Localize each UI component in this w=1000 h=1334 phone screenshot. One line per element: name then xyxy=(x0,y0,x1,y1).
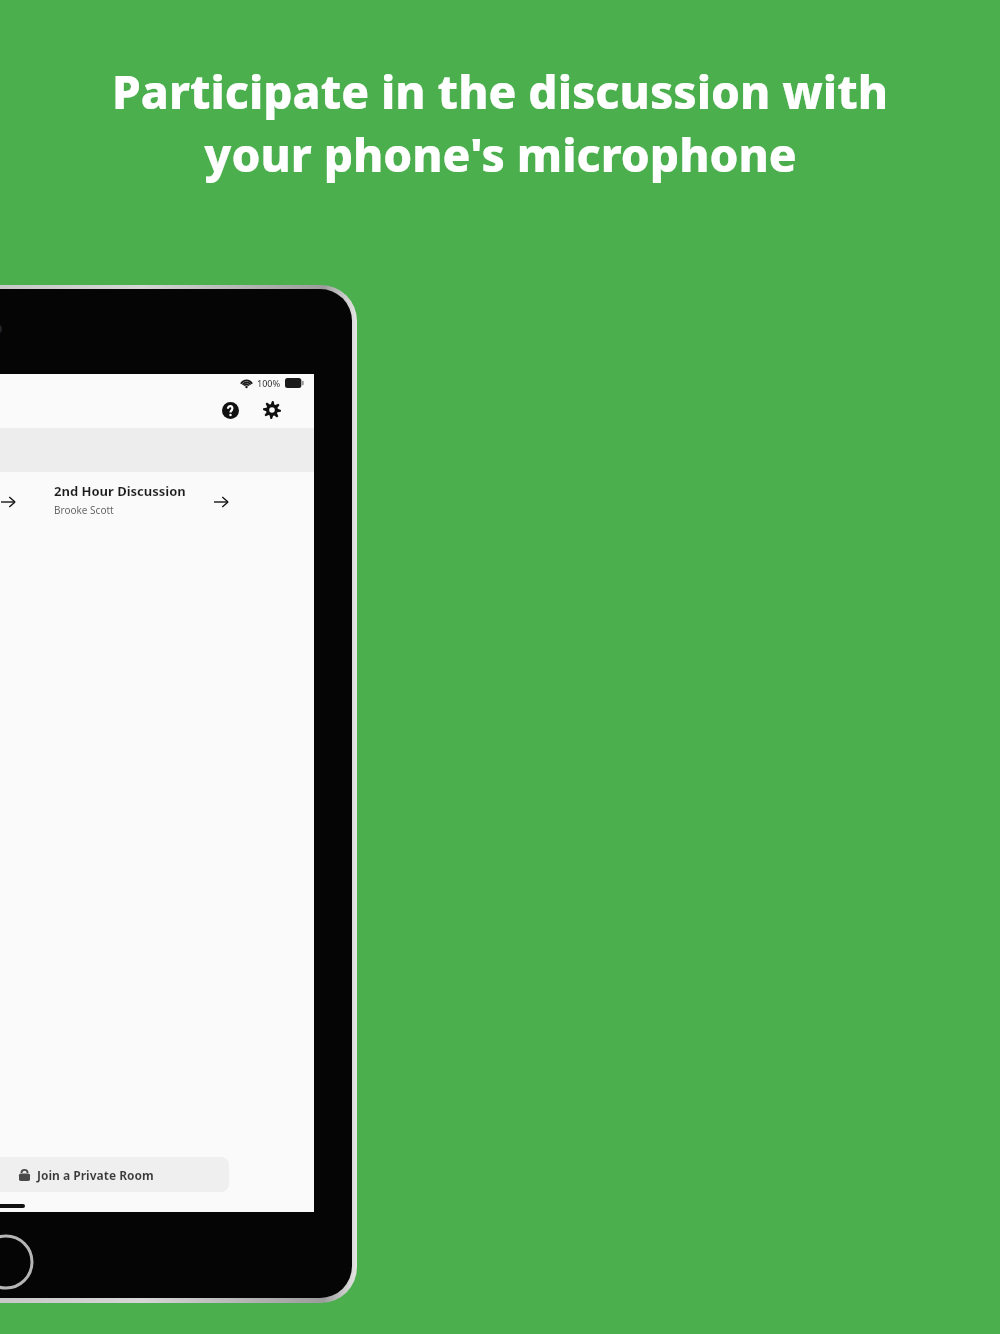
staticText: your phone's microphone xyxy=(204,123,797,186)
staticText: 2nd Hour Discussion xyxy=(54,482,186,500)
button[interactable]: Open 2nd Hour Discussion xyxy=(204,485,238,519)
staticText: Participate in the discussion with xyxy=(112,60,888,123)
staticText: Join a Private Room xyxy=(37,1167,154,1183)
staticText: Brooke Scott xyxy=(54,503,114,517)
button[interactable]: Settings xyxy=(256,394,288,426)
button[interactable]: 2nd Hour Discussion xyxy=(47,480,207,517)
button[interactable]: Open previous room xyxy=(0,485,25,519)
button[interactable]: Join a Private Room xyxy=(0,1157,229,1192)
button[interactable]: Help xyxy=(214,394,246,426)
staticText: 100% xyxy=(257,377,281,389)
